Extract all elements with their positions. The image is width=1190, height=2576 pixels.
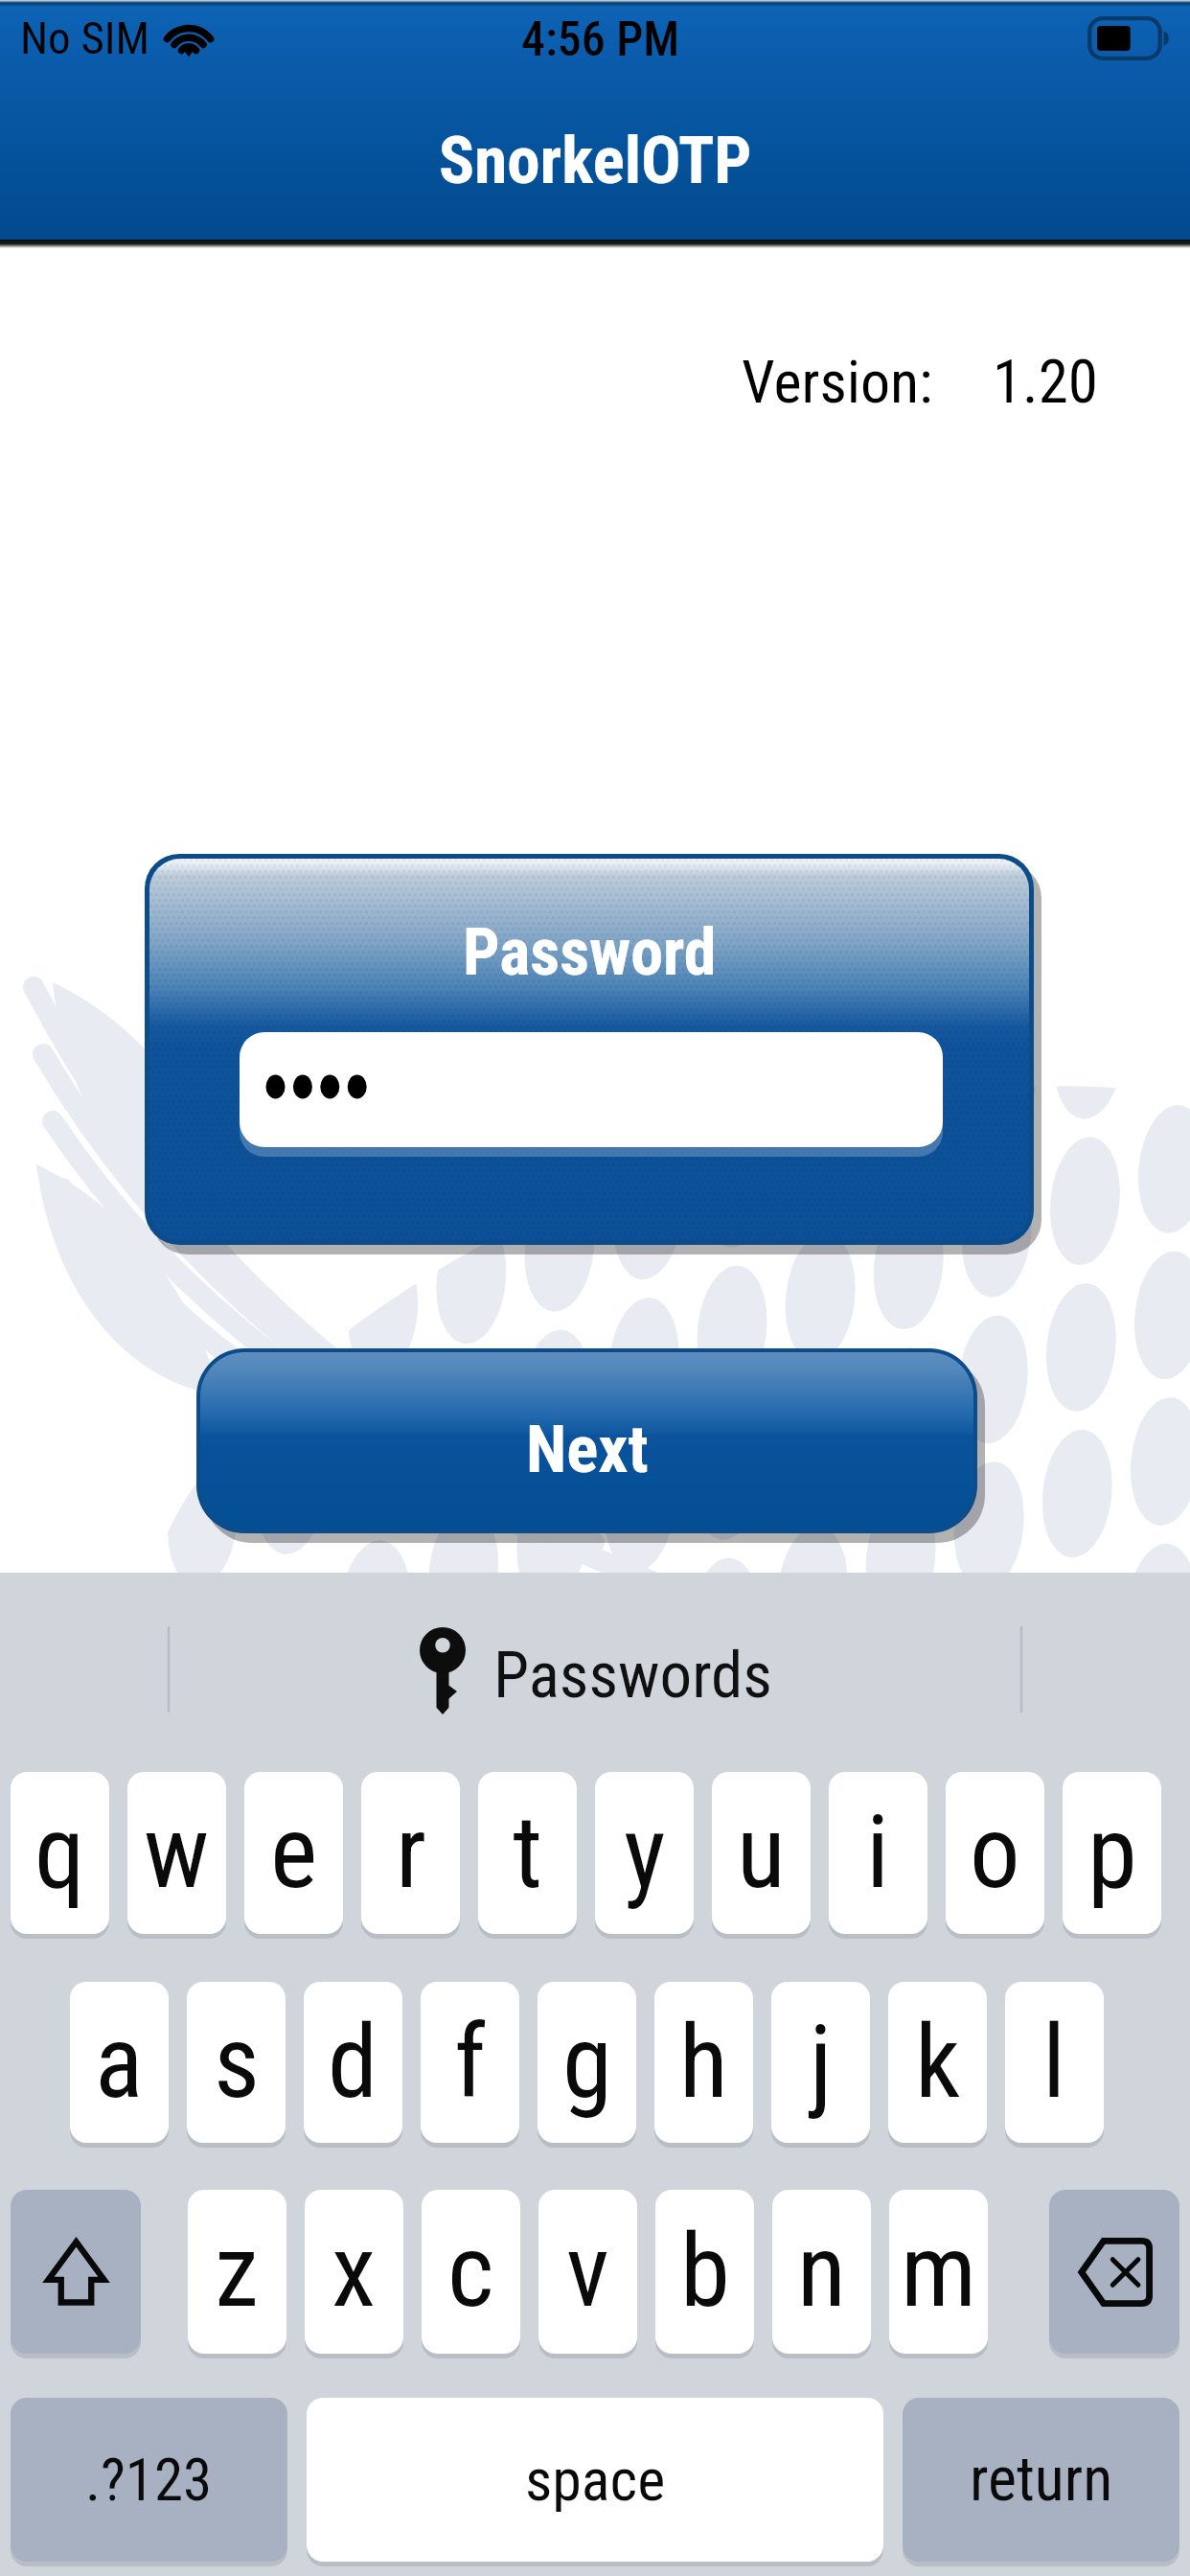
staticText: 1.20 [993, 347, 1098, 418]
staticText: .?123 [85, 2446, 213, 2514]
button[interactable]: e [244, 1772, 343, 1934]
button[interactable]: m [889, 2190, 988, 2354]
staticText: m [901, 2213, 977, 2331]
staticText: a [95, 2004, 144, 2122]
staticText: h [679, 2004, 728, 2122]
button[interactable]: v [538, 2190, 637, 2354]
button[interactable]: q [11, 1772, 109, 1934]
staticText: q [34, 1794, 85, 1912]
staticText: o [970, 1794, 1020, 1912]
button[interactable]: p [1063, 1772, 1161, 1934]
staticText: e [270, 1794, 318, 1912]
staticText: w [144, 1794, 210, 1912]
button[interactable]: b [655, 2190, 754, 2354]
staticText: l [1042, 2004, 1066, 2122]
button[interactable]: r [361, 1772, 460, 1934]
staticText: z [215, 2213, 260, 2331]
staticText: Next [526, 1411, 649, 1488]
staticText: 4:56 PM [521, 11, 680, 68]
button[interactable]: c [422, 2190, 520, 2354]
button[interactable]: l [1005, 1982, 1104, 2143]
button[interactable]: y [595, 1772, 694, 1934]
staticText: return [970, 2444, 1113, 2516]
staticText: r [396, 1794, 426, 1912]
button[interactable]: a [70, 1982, 169, 2143]
button[interactable]: d [304, 1982, 402, 2143]
button[interactable]: Passwords [412, 1619, 778, 1720]
staticText: v [566, 2213, 609, 2331]
staticText: Passwords [493, 1638, 772, 1713]
button[interactable]: Next [200, 1352, 973, 1529]
staticText: SnorkelOTP [439, 122, 752, 199]
button[interactable]: z [188, 2190, 286, 2354]
button[interactable]: Shift [11, 2190, 141, 2354]
button[interactable]: s [187, 1982, 286, 2143]
button[interactable]: f [421, 1982, 519, 2143]
button[interactable]: space [307, 2398, 883, 2562]
staticText: b [680, 2213, 730, 2331]
staticText: Password [463, 914, 717, 991]
button[interactable]: k [888, 1982, 987, 2143]
button[interactable]: .?123 [11, 2398, 287, 2562]
button[interactable]: h [654, 1982, 753, 2143]
staticText: s [214, 2004, 260, 2122]
button[interactable]: g [538, 1982, 636, 2143]
button[interactable]: u [712, 1772, 811, 1934]
staticText: p [1087, 1794, 1137, 1912]
button[interactable]: Backspace [1049, 2190, 1179, 2354]
staticText: i [866, 1794, 890, 1912]
staticText: k [915, 2004, 961, 2122]
button[interactable]: n [772, 2190, 871, 2354]
staticText: g [562, 2004, 612, 2122]
button[interactable]: j [771, 1982, 870, 2143]
staticText: y [624, 1794, 666, 1912]
button[interactable]: o [946, 1772, 1044, 1934]
button[interactable]: w [127, 1772, 226, 1934]
button[interactable]: x [305, 2190, 403, 2354]
button[interactable]: return [903, 2398, 1179, 2562]
staticText: n [797, 2213, 846, 2331]
staticText: u [737, 1794, 786, 1912]
button[interactable]: Password input [240, 1032, 943, 1147]
staticText: No SIM [20, 11, 150, 64]
staticText: x [332, 2213, 377, 2331]
staticText: c [447, 2213, 494, 2331]
staticText: f [454, 2004, 487, 2122]
button[interactable]: t [478, 1772, 577, 1934]
button[interactable]: i [829, 1772, 927, 1934]
staticText: j [810, 2004, 833, 2122]
staticText: space [525, 2445, 666, 2515]
staticText: d [328, 2004, 378, 2122]
staticText: Version: [742, 347, 933, 417]
staticText: t [513, 1794, 543, 1912]
